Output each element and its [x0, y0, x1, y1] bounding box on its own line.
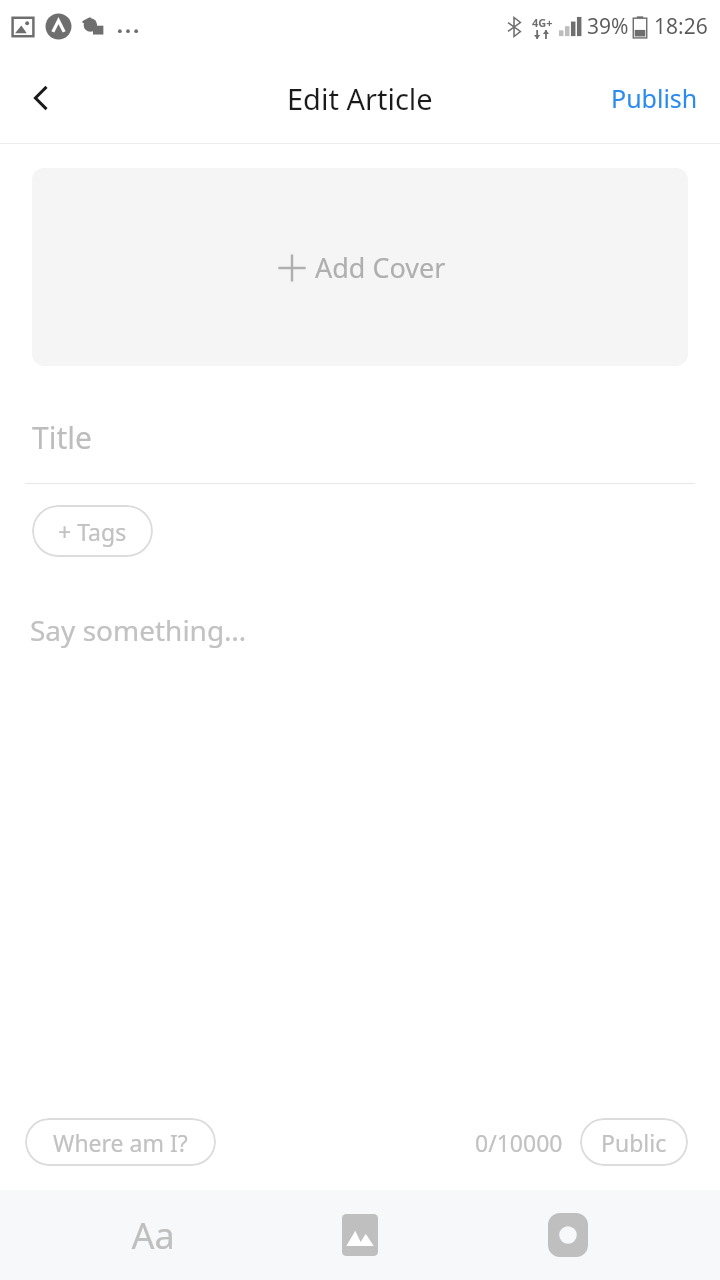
- staticText: Add Cover: [315, 249, 446, 286]
- button[interactable]: Publish: [599, 73, 710, 123]
- button[interactable]: Insert video: [513, 1190, 623, 1280]
- staticText: Aa: [131, 1211, 175, 1260]
- staticText: Say something…: [30, 611, 247, 649]
- button[interactable]: Title: [0, 406, 720, 468]
- button[interactable]: Add Cover: [32, 168, 688, 366]
- staticText: 39%: [587, 12, 629, 41]
- button[interactable]: Say something…: [0, 605, 720, 1118]
- button[interactable]: Back: [13, 70, 69, 126]
- button[interactable]: Text style: [98, 1190, 208, 1280]
- staticText: Title: [32, 417, 92, 458]
- button[interactable]: + Tags: [32, 505, 153, 557]
- staticText: 4G+: [532, 15, 553, 30]
- staticText: Publish: [611, 81, 698, 115]
- staticText: Public: [601, 1127, 667, 1158]
- staticText: Edit Article: [287, 79, 433, 118]
- staticText: Where am I?: [53, 1127, 188, 1158]
- button[interactable]: Public: [580, 1118, 688, 1166]
- staticText: 0/10000: [475, 1127, 563, 1158]
- button[interactable]: Insert image: [305, 1190, 415, 1280]
- button[interactable]: Where am I?: [25, 1118, 216, 1166]
- staticText: 18:26: [654, 12, 708, 41]
- staticText: + Tags: [58, 516, 127, 547]
